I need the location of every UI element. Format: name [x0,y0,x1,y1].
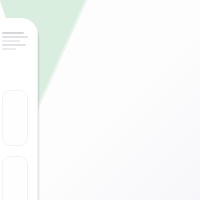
button[interactable]: List item [2,156,28,200]
button[interactable]: List item [2,90,28,146]
button[interactable]: List item [0,18,38,200]
